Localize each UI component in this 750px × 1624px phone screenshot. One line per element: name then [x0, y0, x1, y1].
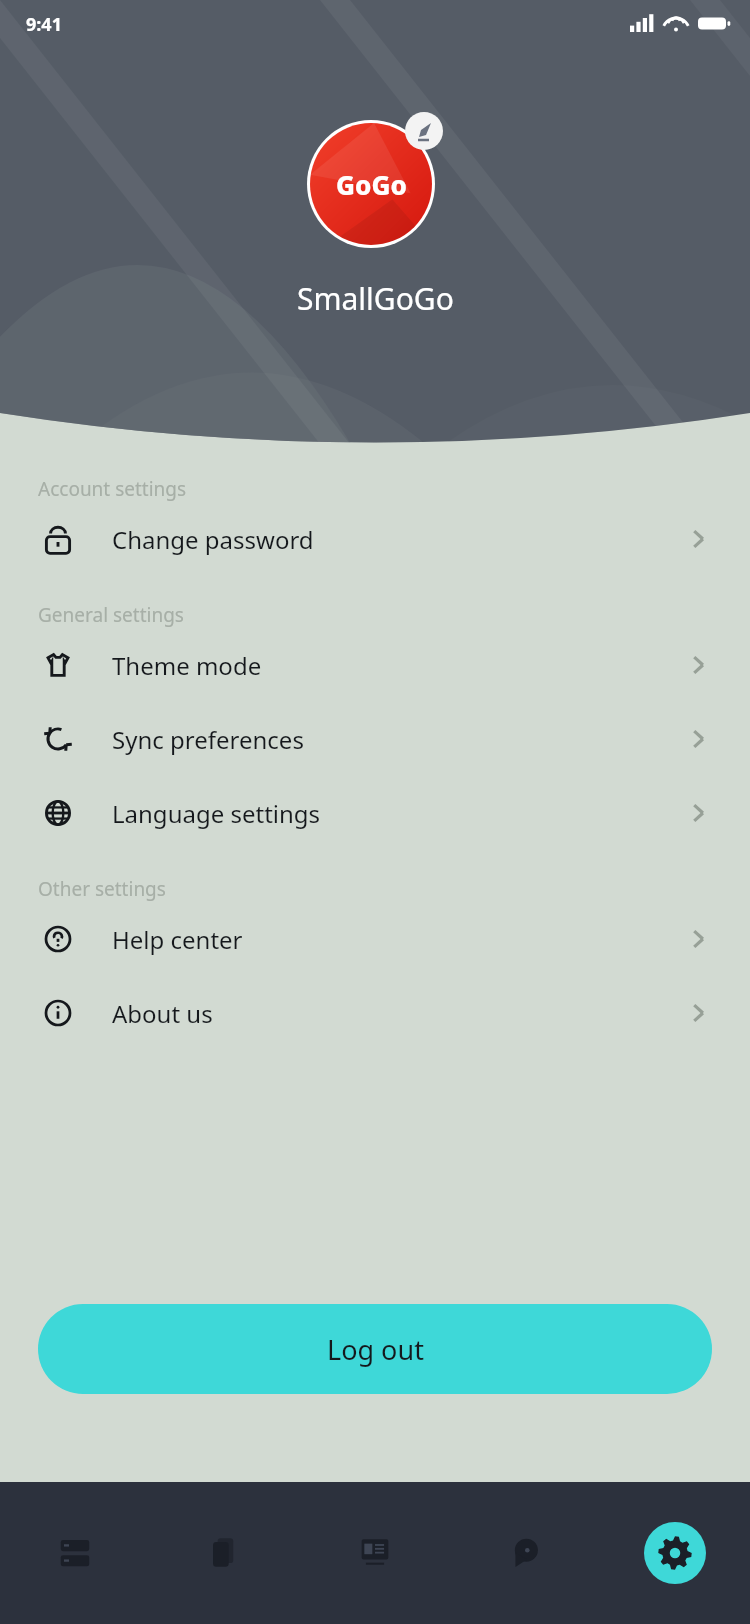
- staticText: Account settings: [38, 476, 187, 502]
- staticText: Sync preferences: [112, 723, 304, 756]
- button[interactable]: Change password: [0, 502, 750, 576]
- button[interactable]: Settings: [644, 1522, 706, 1584]
- button[interactable]: Messages: [450, 1482, 600, 1624]
- button[interactable]: Edit profile photo: [307, 112, 443, 248]
- staticText: Log out: [327, 1331, 424, 1368]
- staticText: SmallGoGo: [297, 278, 454, 319]
- staticText: Help center: [112, 923, 243, 956]
- button[interactable]: Log out: [38, 1304, 712, 1394]
- button[interactable]: Sync preferences: [0, 702, 750, 776]
- staticText: Language settings: [112, 797, 321, 830]
- button[interactable]: About us: [0, 976, 750, 1050]
- button[interactable]: Language settings: [0, 776, 750, 850]
- button[interactable]: Theme mode: [0, 628, 750, 702]
- staticText: Theme mode: [112, 649, 262, 682]
- staticText: General settings: [38, 602, 184, 628]
- staticText: About us: [112, 997, 213, 1030]
- staticText: GoGo: [336, 167, 407, 202]
- staticText: 9:41: [26, 12, 62, 37]
- button[interactable]: Dashboard: [0, 1482, 150, 1624]
- button[interactable]: Help center: [0, 902, 750, 976]
- button[interactable]: News: [300, 1482, 450, 1624]
- staticText: Other settings: [38, 876, 166, 902]
- staticText: Change password: [112, 523, 314, 556]
